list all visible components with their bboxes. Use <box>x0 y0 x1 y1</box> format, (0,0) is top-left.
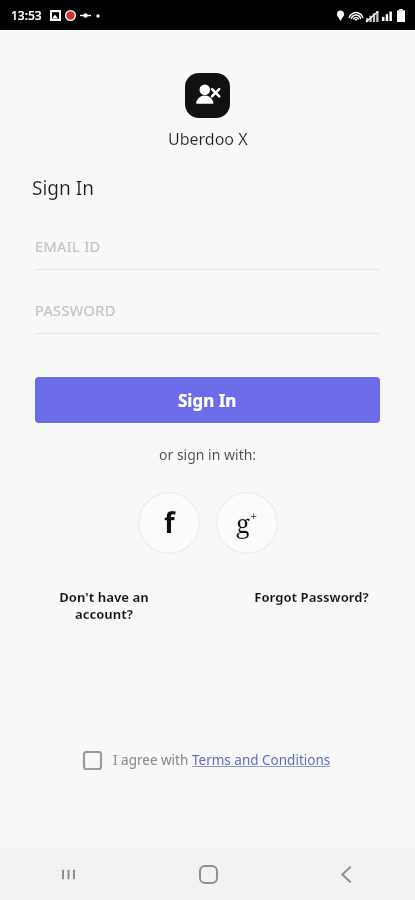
button[interactable]: Uberdoo X logo <box>185 73 230 118</box>
staticText: Sign In <box>32 175 94 201</box>
staticText: or sign in with: <box>159 445 257 464</box>
staticText: + <box>250 507 258 525</box>
staticText: f <box>164 503 175 541</box>
button[interactable]: PASSWORD <box>35 297 380 323</box>
staticText: PASSWORD <box>35 300 116 320</box>
button[interactable]: I agree with <box>80 745 335 775</box>
staticText: 13:53 <box>11 7 42 23</box>
staticText: I agree with <box>113 751 192 769</box>
button[interactable]: Recents <box>0 848 139 900</box>
button[interactable]: Sign in with Facebook <box>138 492 200 554</box>
staticText: Sign In <box>178 389 237 412</box>
staticText: g <box>236 505 250 540</box>
staticText: Uberdoo X <box>168 128 248 150</box>
button[interactable]: Home <box>139 848 277 900</box>
staticText: EMAIL ID <box>35 236 101 256</box>
button[interactable]: Forgot Password? <box>207 588 415 606</box>
button[interactable]: Back <box>277 848 415 900</box>
button[interactable]: Sign In <box>35 377 380 423</box>
staticText: Don't have an account? <box>59 588 149 623</box>
button[interactable]: EMAIL ID <box>35 233 380 259</box>
staticText: Forgot Password? <box>254 588 369 606</box>
button[interactable]: Don't have an account? <box>0 588 207 623</box>
button[interactable]: Sign in with Google Plus <box>216 492 278 554</box>
staticText: Terms and Conditions <box>192 751 331 769</box>
